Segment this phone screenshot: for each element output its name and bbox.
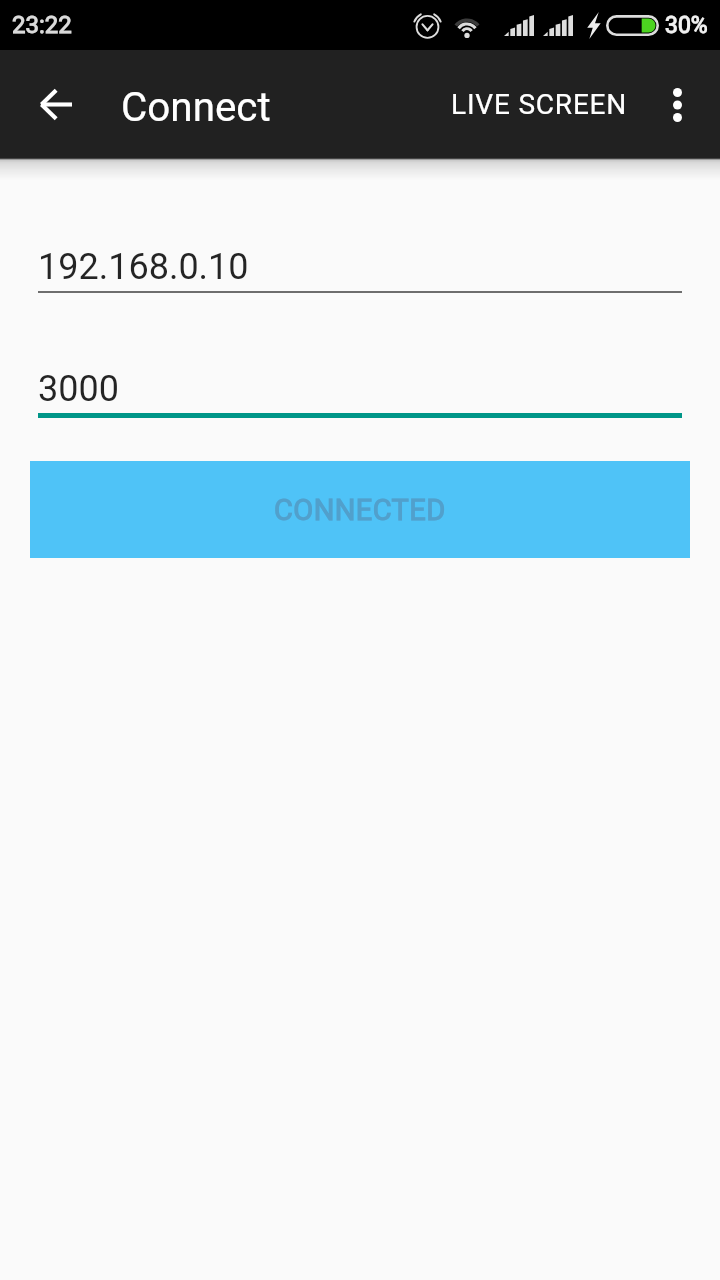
staticText: 30%	[665, 12, 708, 39]
staticText: 3000	[38, 368, 119, 410]
button[interactable]: More options	[642, 69, 713, 140]
staticText: LIVE SCREEN	[451, 88, 628, 121]
button[interactable]: LIVE SCREEN	[437, 64, 642, 145]
button[interactable]: 192.168.0.10	[0, 246, 720, 293]
staticText: 23:22	[12, 11, 72, 39]
staticText: CONNECTED	[274, 493, 446, 527]
button[interactable]: 3000	[0, 368, 720, 418]
staticText: 192.168.0.10	[38, 246, 249, 288]
staticText: Connect	[121, 84, 271, 131]
button[interactable]: CONNECTED	[30, 461, 690, 558]
button[interactable]: Back	[13, 62, 97, 146]
